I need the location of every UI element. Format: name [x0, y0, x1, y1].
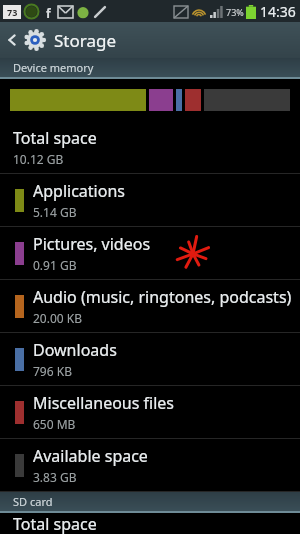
button[interactable]: Back	[0, 22, 300, 58]
staticText: Pictures, videos	[33, 233, 151, 255]
staticText: Downloads	[33, 339, 117, 361]
staticText: Available space	[33, 445, 148, 467]
staticText: Device memory	[13, 60, 94, 75]
staticText: 3.83 GB	[33, 469, 77, 485]
button[interactable]: Audio (music, ringtones, podcasts)	[0, 280, 300, 333]
staticText: 5.14 GB	[33, 204, 77, 220]
staticText: 796 KB	[33, 363, 72, 379]
button[interactable]: Total space	[0, 513, 300, 534]
staticText: Applications	[33, 180, 125, 202]
staticText: f	[46, 5, 51, 19]
staticText: SD card	[13, 494, 53, 509]
button[interactable]: Back	[0, 22, 24, 58]
staticText: Miscellaneous files	[33, 392, 174, 414]
staticText: 20.00 KB	[33, 310, 83, 326]
staticText: Audio (music, ringtones, podcasts)	[33, 286, 292, 308]
staticText: 650 MB	[33, 416, 76, 432]
staticText: 14:36	[260, 2, 296, 21]
staticText: 73	[7, 6, 18, 18]
staticText: 73%	[226, 6, 244, 18]
button[interactable]: Miscellaneous files	[0, 386, 300, 439]
staticText: 0.91 GB	[33, 257, 77, 273]
staticText: Total space	[13, 513, 97, 534]
button[interactable]: Pictures, videos	[0, 227, 300, 280]
staticText: Storage	[54, 29, 117, 52]
staticText: Total space	[13, 127, 97, 149]
button[interactable]: Available space	[0, 439, 300, 492]
button[interactable]: Downloads	[0, 333, 300, 386]
button[interactable]: Applications	[0, 174, 300, 227]
staticText: 10.12 GB	[13, 151, 64, 167]
button[interactable]: Total space	[0, 121, 300, 174]
